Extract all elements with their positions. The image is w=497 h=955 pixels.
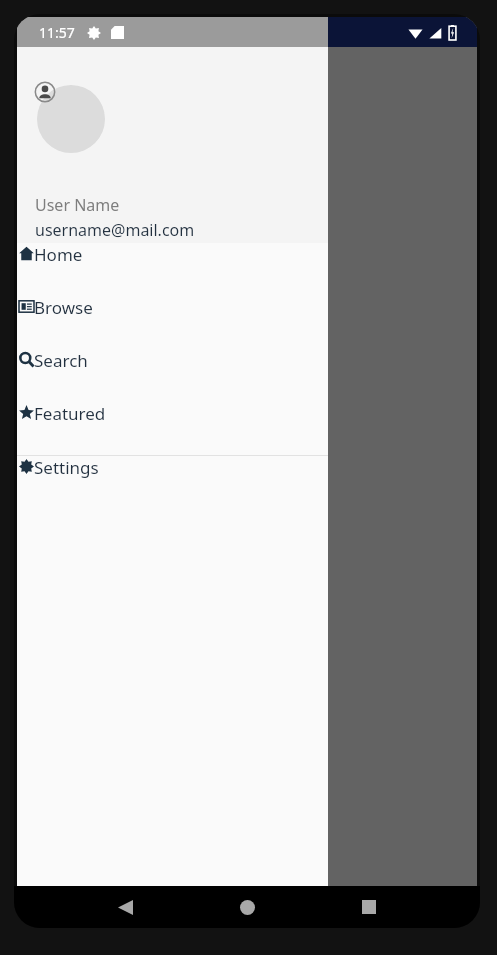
button[interactable]: Settings bbox=[17, 456, 328, 509]
button[interactable]: Recents bbox=[352, 890, 386, 924]
staticText: Browse bbox=[34, 296, 93, 319]
staticText: 11:57 bbox=[39, 23, 75, 42]
button[interactable]: Back bbox=[108, 890, 142, 924]
staticText: username@mail.com bbox=[35, 219, 195, 241]
button[interactable]: Search bbox=[17, 349, 328, 402]
staticText: Settings bbox=[34, 456, 99, 479]
staticText: User Name bbox=[35, 194, 120, 216]
staticText: Featured bbox=[34, 402, 106, 425]
button[interactable]: Home bbox=[230, 890, 264, 924]
button[interactable]: Home bbox=[17, 243, 328, 296]
button[interactable]: Featured bbox=[17, 402, 328, 455]
staticText: Swipe from here --> bbox=[217, 475, 392, 501]
button[interactable]: Browse bbox=[17, 296, 328, 349]
staticText: Home bbox=[34, 243, 83, 266]
staticText: Search bbox=[34, 349, 88, 372]
